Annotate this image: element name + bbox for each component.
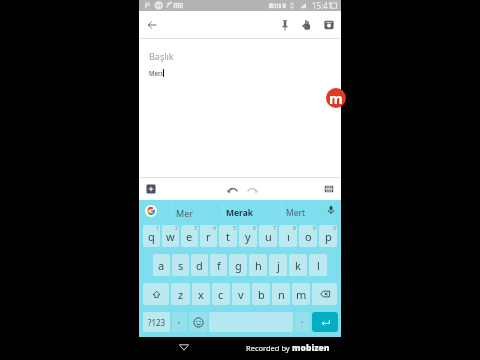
button[interactable]: ı — [279, 225, 297, 247]
button[interactable]: Backspace — [312, 283, 337, 305]
button[interactable]: , — [172, 312, 187, 332]
button[interactable]: s — [172, 254, 189, 276]
button[interactable]: Back — [179, 342, 189, 352]
button[interactable]: f — [210, 254, 227, 276]
button[interactable]: Voice input — [326, 205, 336, 215]
button[interactable]: x — [192, 283, 210, 305]
staticText: m — [329, 89, 343, 108]
staticText: l — [317, 258, 320, 273]
staticText: ı — [287, 229, 290, 244]
button[interactable]: j — [269, 254, 287, 276]
button[interactable]: More options — [324, 184, 334, 194]
staticText: g — [235, 258, 242, 273]
staticText: 15:41 — [312, 0, 333, 11]
button[interactable]: Shift — [143, 283, 169, 305]
button[interactable]: o — [299, 225, 317, 247]
staticText: Merak — [226, 207, 254, 219]
staticText: x — [198, 287, 204, 302]
staticText: 3 — [194, 225, 197, 232]
button[interactable]: Emoji — [189, 312, 207, 332]
button[interactable]: Archive — [322, 18, 336, 32]
staticText: p — [325, 229, 332, 244]
staticText: f — [217, 258, 221, 273]
button[interactable]: u — [259, 225, 277, 247]
staticText: w — [166, 229, 175, 244]
staticText: c — [218, 287, 224, 302]
button[interactable]: n — [272, 283, 290, 305]
staticText: 4 — [213, 225, 216, 232]
button[interactable]: Merak — [218, 200, 262, 225]
button[interactable]: Enter — [312, 312, 338, 332]
staticText: m — [296, 287, 307, 302]
button[interactable]: Undo — [226, 183, 238, 195]
button[interactable]: m — [292, 283, 310, 305]
staticText: q — [148, 229, 155, 244]
button[interactable]: z — [171, 283, 190, 305]
staticText: n — [278, 287, 285, 302]
staticText: j — [277, 258, 280, 273]
button[interactable]: v — [232, 283, 250, 305]
staticText: 0 — [333, 225, 336, 232]
button[interactable]: e — [181, 225, 198, 247]
staticText: Mer — [176, 207, 193, 219]
staticText: 6 — [253, 225, 256, 232]
staticText: y — [245, 229, 251, 244]
staticText: s — [178, 258, 184, 273]
button[interactable]: Mert — [281, 200, 311, 225]
button[interactable]: Mer — [164, 200, 204, 225]
staticText: d — [196, 258, 203, 273]
staticText: 7 — [273, 225, 276, 232]
staticText: o — [305, 229, 312, 244]
staticText: u — [265, 229, 272, 244]
button[interactable]: d — [191, 254, 208, 276]
staticText: ?123 — [148, 317, 166, 328]
button[interactable]: Add — [146, 184, 156, 194]
staticText: 1 — [156, 225, 159, 232]
button[interactable]: a — [153, 254, 170, 276]
staticText: mobizen — [292, 342, 330, 354]
button[interactable]: q — [143, 225, 160, 247]
staticText: v — [238, 287, 244, 302]
staticText: k — [295, 258, 301, 273]
button[interactable]: p — [319, 225, 337, 247]
staticText: a — [158, 258, 165, 273]
button[interactable]: l — [309, 254, 327, 276]
button[interactable]: w — [162, 225, 179, 247]
button[interactable]: r — [200, 225, 217, 247]
staticText: b — [258, 287, 265, 302]
staticText: 8 — [293, 225, 296, 232]
button[interactable]: c — [212, 283, 230, 305]
button[interactable]: Reminder — [300, 18, 314, 32]
staticText: , — [178, 313, 181, 325]
staticText: e — [186, 229, 193, 244]
staticText: 2 — [175, 225, 178, 232]
button[interactable]: Back — [146, 19, 158, 31]
button[interactable]: g — [229, 254, 247, 276]
button[interactable]: y — [239, 225, 257, 247]
button[interactable]: Google search — [145, 205, 157, 217]
staticText: r — [206, 229, 211, 244]
staticText: Mert — [286, 207, 306, 219]
button[interactable]: Redo — [247, 183, 259, 195]
button[interactable]: k — [289, 254, 307, 276]
button[interactable]: b — [252, 283, 270, 305]
staticText: Başlık — [149, 50, 174, 62]
staticText: t — [226, 229, 230, 244]
staticText: . — [301, 313, 304, 325]
button[interactable]: Pin — [278, 18, 292, 32]
staticText: Mert — [149, 69, 163, 77]
button[interactable]: t — [219, 225, 237, 247]
staticText: 5 — [233, 225, 236, 232]
button[interactable]: . — [295, 312, 310, 332]
staticText: 9 — [313, 225, 316, 232]
staticText: h — [255, 258, 262, 273]
button[interactable]: h — [249, 254, 267, 276]
button[interactable]: ?123 — [143, 312, 170, 332]
staticText: z — [178, 287, 184, 302]
staticText: Recorded by — [246, 343, 290, 353]
